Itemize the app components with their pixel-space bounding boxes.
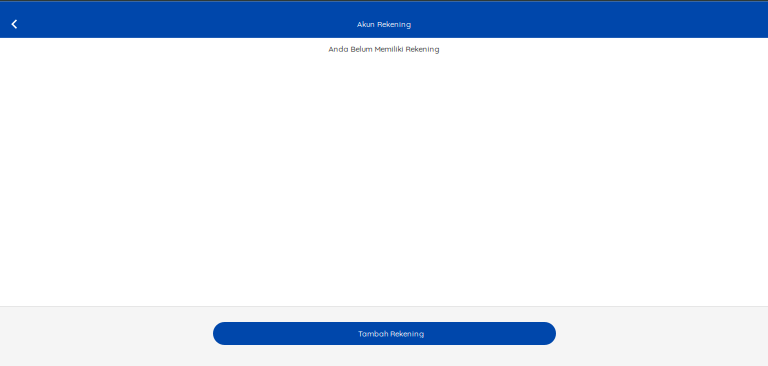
button[interactable]: Back: [3, 13, 25, 35]
button[interactable]: Tambah Rekening: [213, 322, 556, 345]
staticText: Anda Belum Memiliki Rekening: [328, 44, 439, 54]
staticText: Tambah Rekening: [358, 329, 424, 338]
staticText: Akun Rekening: [357, 19, 411, 29]
